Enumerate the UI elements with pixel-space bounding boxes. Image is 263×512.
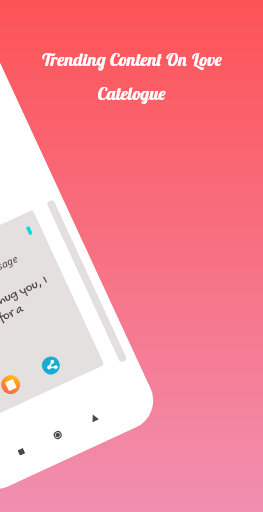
button[interactable]: Share: [39, 353, 63, 377]
button[interactable]: Recent apps: [13, 444, 29, 460]
staticText: Message: [0, 251, 21, 281]
staticText: I just want to hug you, I won't let go f…: [0, 273, 64, 371]
button[interactable]: Home: [50, 427, 66, 443]
staticText: Trending Content On Love: [41, 48, 222, 71]
button[interactable]: Copy: [0, 372, 23, 397]
staticText: Catelogue: [97, 82, 166, 105]
button[interactable]: Message: [0, 210, 105, 428]
button[interactable]: Back: [86, 409, 101, 425]
